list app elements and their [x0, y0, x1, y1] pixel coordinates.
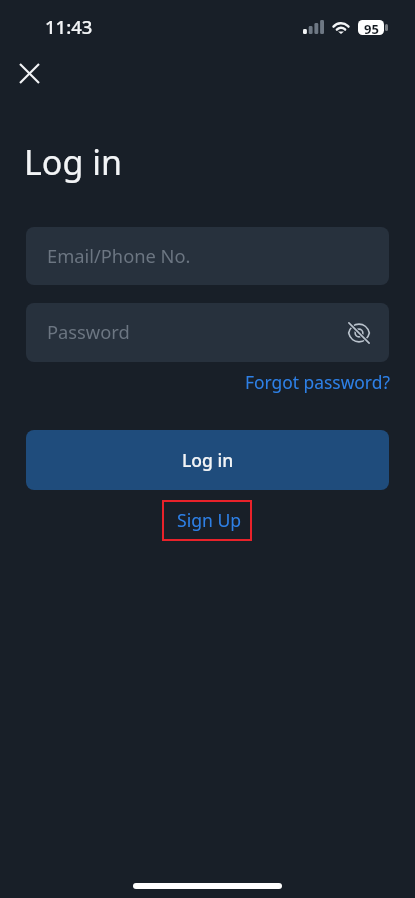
- staticText: Password: [47, 319, 130, 344]
- button[interactable]: Email/Phone No.: [26, 227, 389, 285]
- staticText: 11:43: [45, 14, 93, 39]
- staticText: Forgot password?: [245, 370, 390, 394]
- button[interactable]: Sign Up: [162, 500, 252, 541]
- staticText: Log in: [182, 448, 234, 472]
- staticText: Sign Up: [177, 508, 242, 532]
- staticText: Log in: [24, 139, 122, 185]
- button[interactable]: Forgot password?: [233, 365, 390, 395]
- button[interactable]: Close: [11, 55, 48, 92]
- other: Cellular signal: [303, 20, 324, 34]
- button[interactable]: Show password: [343, 317, 375, 349]
- other: Wi-Fi: [330, 19, 352, 34]
- button[interactable]: Log in: [26, 430, 389, 490]
- staticText: Email/Phone No.: [47, 243, 191, 268]
- staticText: 95: [364, 20, 379, 35]
- button[interactable]: Password: [26, 303, 389, 362]
